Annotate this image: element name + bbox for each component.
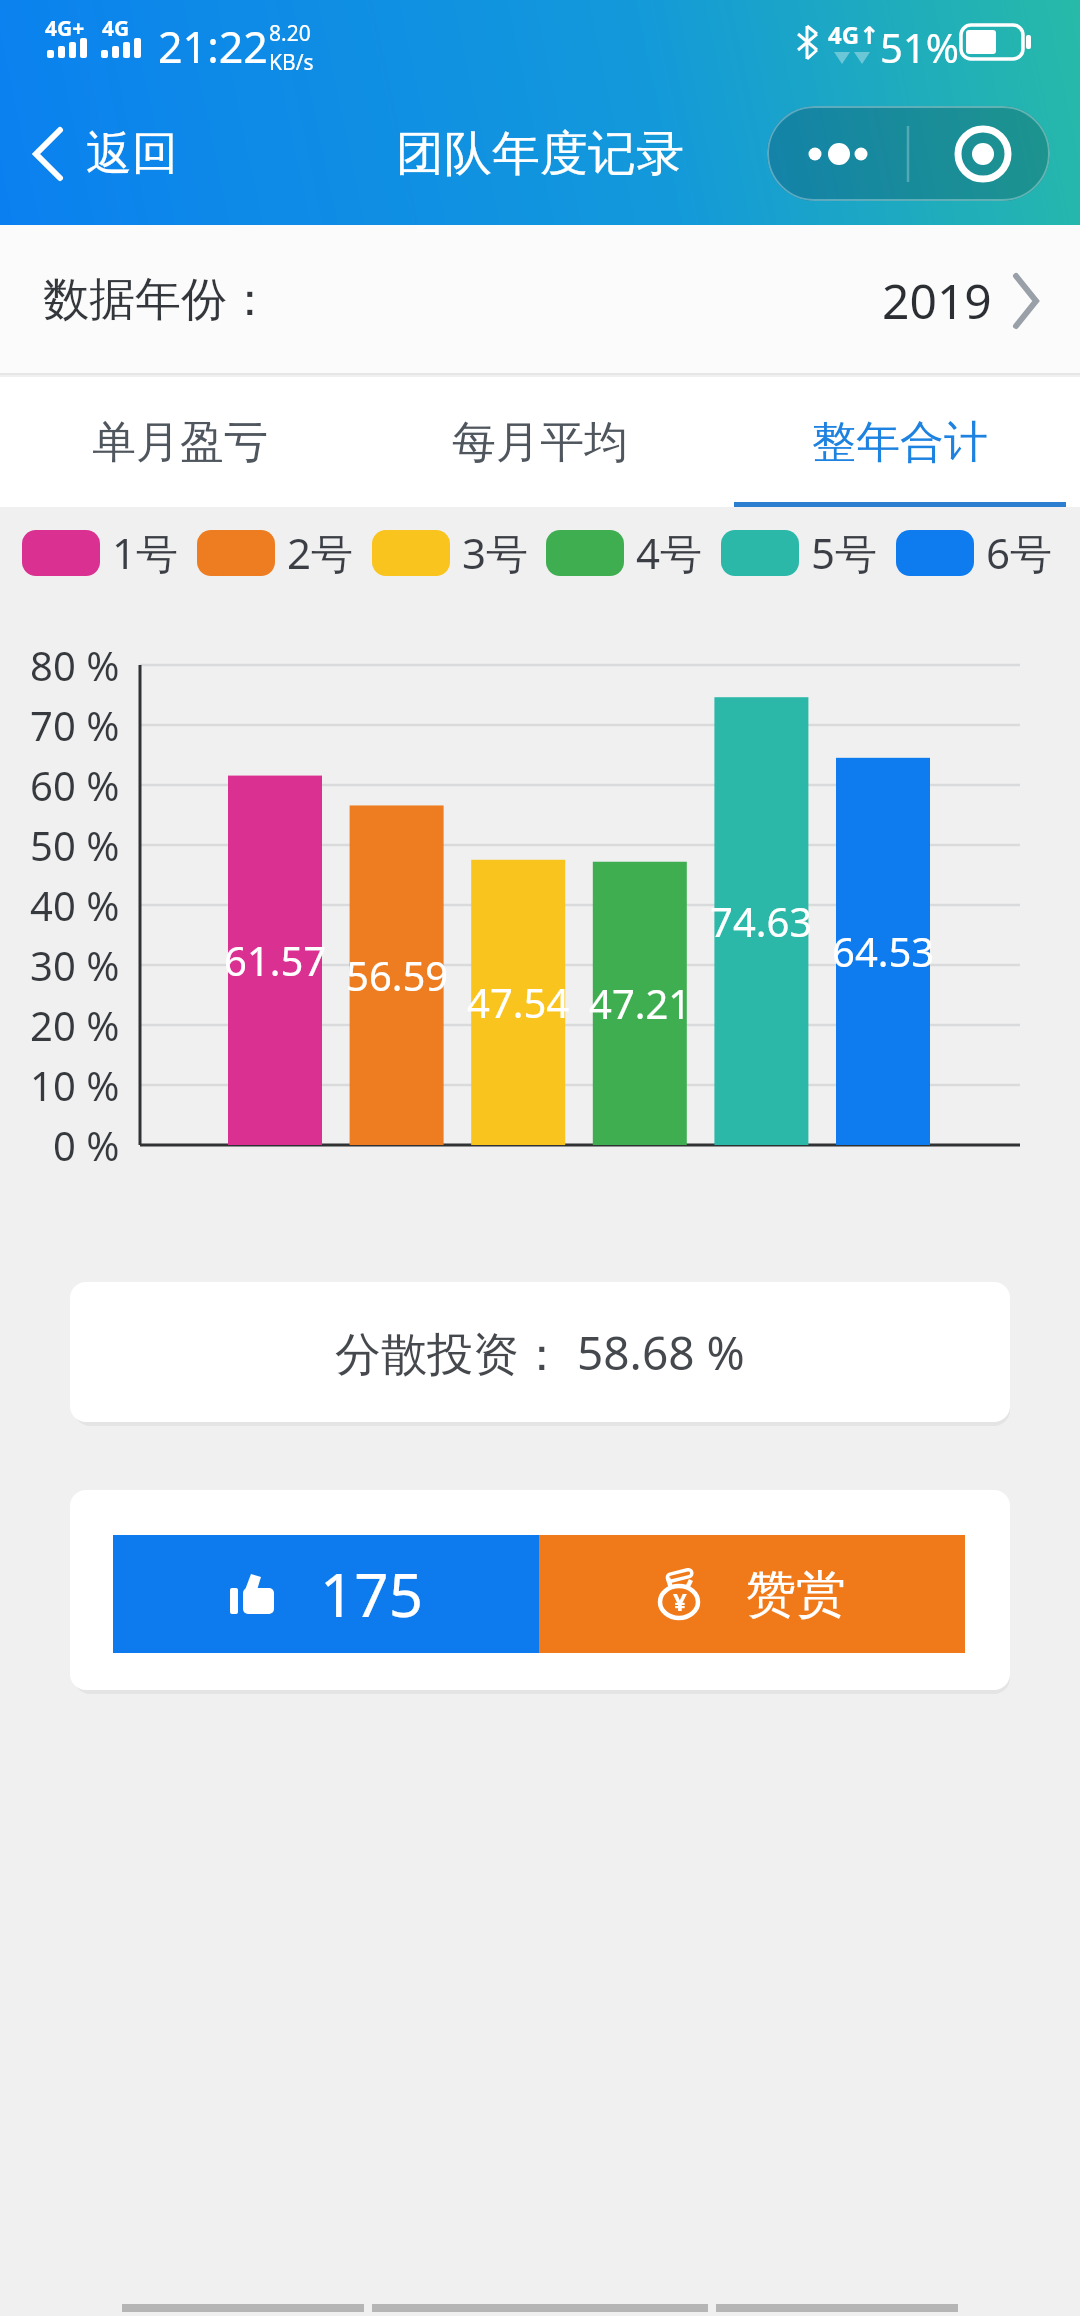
button[interactable] xyxy=(767,106,908,201)
staticText: 返回 xyxy=(86,125,178,183)
staticText: 0 % xyxy=(53,1118,120,1172)
staticText: 175 xyxy=(320,1553,423,1635)
staticText: 数据年份： xyxy=(43,271,273,329)
staticText: 10 % xyxy=(30,1058,120,1112)
button[interactable]: 175 xyxy=(113,1535,539,1653)
staticText: 2019 xyxy=(882,268,992,333)
staticText: 1号 xyxy=(112,524,179,581)
staticText: 整年合计 xyxy=(812,415,988,470)
button[interactable]: 返回 xyxy=(30,106,230,201)
staticText: 21:22 xyxy=(158,17,268,76)
staticText: 2号 xyxy=(287,524,354,581)
button[interactable] xyxy=(908,106,1050,201)
staticText: 3号 xyxy=(462,524,529,581)
staticText: 61.57 xyxy=(224,933,327,987)
staticText: 4G↑ xyxy=(828,18,880,51)
staticText: 分散投资： 58.68 % xyxy=(335,1321,745,1384)
staticText: 4G+ xyxy=(45,14,85,43)
staticText: 64.53 xyxy=(832,924,935,978)
button[interactable]: ¥ xyxy=(539,1535,965,1653)
staticText: 4号 xyxy=(636,524,703,581)
staticText: 每月平均 xyxy=(452,415,628,470)
staticText: 6号 xyxy=(986,524,1053,581)
staticText: 团队年度记录 xyxy=(396,124,684,184)
staticText: KB/s xyxy=(269,48,314,77)
staticText: 单月盈亏 xyxy=(92,415,268,470)
staticText: 4G xyxy=(102,14,130,43)
staticText: 47.54 xyxy=(467,975,570,1029)
staticText: 70 % xyxy=(30,698,120,752)
staticText: 20 % xyxy=(30,998,120,1052)
button[interactable]: 单月盈亏 xyxy=(0,377,360,507)
staticText: 30 % xyxy=(30,938,120,992)
button[interactable]: 每月平均 xyxy=(360,377,720,507)
staticText: 5号 xyxy=(811,524,878,581)
staticText: 47.21 xyxy=(589,976,692,1030)
button[interactable]: 整年合计 xyxy=(720,377,1080,507)
staticText: 50 % xyxy=(30,818,120,872)
staticText: 80 % xyxy=(30,638,120,692)
staticText: 8.20 xyxy=(269,19,311,48)
staticText: 赞赏 xyxy=(746,1563,846,1626)
staticText: 56.59 xyxy=(346,948,449,1002)
staticText: 40 % xyxy=(30,878,120,932)
staticText: 74.63 xyxy=(710,894,813,948)
staticText: 51% xyxy=(880,20,959,74)
staticText: 60 % xyxy=(30,758,120,812)
button[interactable]: 数据年份： xyxy=(0,225,1080,375)
staticText: ¥ xyxy=(673,1585,687,1618)
